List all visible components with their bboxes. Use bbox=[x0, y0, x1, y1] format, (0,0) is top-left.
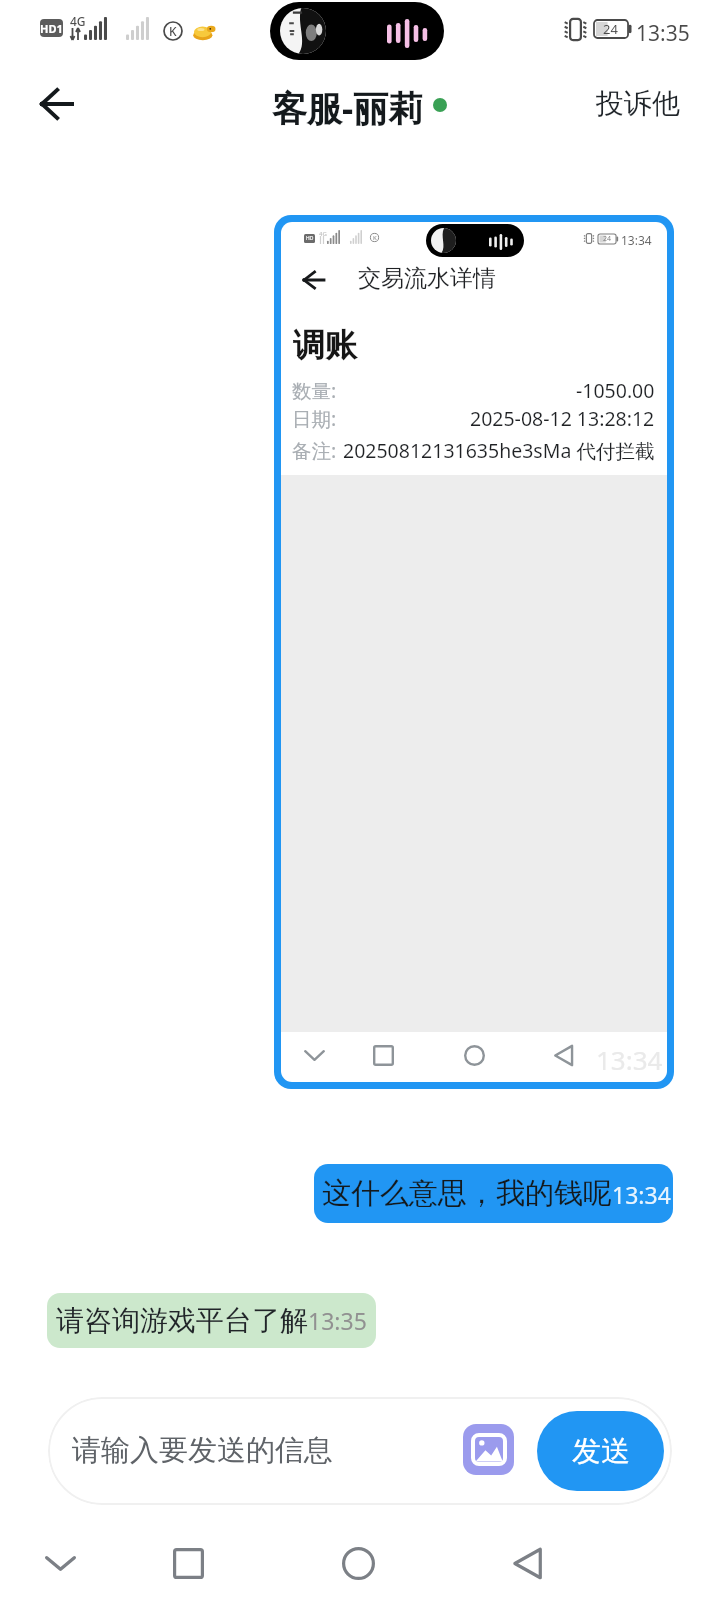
button[interactable]: Back bbox=[484, 1519, 572, 1607]
staticText: 4G bbox=[70, 13, 86, 29]
staticText: 备注: bbox=[292, 437, 337, 464]
staticText: -1050.00 bbox=[576, 377, 655, 404]
staticText: K bbox=[373, 234, 377, 242]
staticText: 24 bbox=[603, 20, 618, 38]
staticText: 4G bbox=[319, 230, 327, 238]
staticText: 20250812131635he3sMa 代付拦截 bbox=[343, 437, 655, 464]
button[interactable]: Home bbox=[314, 1519, 402, 1607]
staticText: 13:35 bbox=[308, 1305, 367, 1336]
staticText: 日期: bbox=[292, 405, 337, 432]
staticText: HD bbox=[306, 235, 314, 242]
staticText: 投诉他 bbox=[596, 86, 680, 121]
staticText: 13:35 bbox=[636, 19, 690, 48]
button[interactable]: Pick image bbox=[463, 1424, 514, 1475]
button[interactable]: Back bbox=[24, 72, 88, 136]
staticText: K bbox=[169, 23, 177, 39]
staticText: 数量: bbox=[292, 377, 337, 404]
button[interactable]: 这什么意思，我的钱呢 bbox=[314, 1164, 673, 1223]
button[interactable]: 请咨询游戏平台了解 bbox=[47, 1293, 376, 1348]
staticText: 请咨询游戏平台了解 bbox=[56, 1303, 308, 1338]
staticText: 13:34 bbox=[596, 1042, 663, 1077]
button[interactable]: Recents bbox=[144, 1519, 232, 1607]
staticText: 2025-08-12 13:28:12 bbox=[470, 405, 655, 432]
staticText: 客服-丽莉 bbox=[272, 84, 424, 132]
staticText: 这什么意思，我的钱呢 bbox=[322, 1175, 612, 1212]
staticText: 调账 bbox=[293, 325, 357, 365]
button[interactable]: Hide keyboard bbox=[16, 1519, 104, 1607]
staticText: 请输入要发送的信息 bbox=[72, 1432, 333, 1469]
staticText: 13:34 bbox=[612, 1179, 671, 1210]
button[interactable]: HD bbox=[281, 222, 667, 1082]
staticText: 交易流水详情 bbox=[358, 264, 496, 293]
staticText: 发送 bbox=[572, 1433, 630, 1470]
staticText: 13:34 bbox=[621, 232, 652, 248]
button[interactable]: 投诉他 bbox=[586, 78, 690, 129]
button[interactable]: 发送 bbox=[537, 1411, 664, 1491]
button[interactable]: 请输入要发送的信息 bbox=[72, 1432, 333, 1469]
staticText: HD1 bbox=[40, 21, 63, 36]
staticText: 24 bbox=[603, 234, 612, 244]
